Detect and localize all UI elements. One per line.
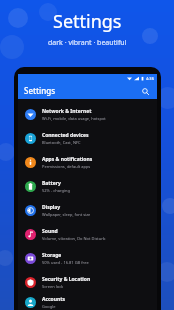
button[interactable]: Security & Location: [18, 270, 157, 294]
staticText: Wallpaper, sleep, font size: [42, 212, 91, 217]
button[interactable]: Network & Internet: [18, 102, 157, 126]
staticText: Settings: [53, 9, 122, 34]
staticText: Network & Internet: [42, 108, 92, 115]
button[interactable]: Connected devices: [18, 126, 157, 150]
staticText: 52% - charging: [42, 188, 70, 193]
button[interactable]: Apps & notifications: [18, 150, 157, 174]
staticText: 4:36: [146, 76, 154, 81]
staticText: Apps & notifications: [42, 156, 93, 163]
staticText: Security & Location: [42, 276, 91, 283]
staticText: Settings: [24, 85, 56, 96]
button[interactable]: Display: [18, 198, 157, 222]
staticText: Volume, vibration, Do Not Disturb: [42, 236, 106, 241]
staticText: Sound: [42, 228, 58, 235]
staticText: Screen lock: [42, 284, 64, 289]
staticText: Display: [42, 204, 61, 211]
staticText: dark · vibrant · beautiful: [48, 38, 127, 48]
staticText: 50% used - 16.81 GB free: [42, 260, 89, 265]
button[interactable]: Search: [139, 85, 151, 97]
button[interactable]: Battery: [18, 174, 157, 198]
staticText: Battery: [42, 180, 61, 187]
staticText: Storage: [42, 252, 62, 259]
staticText: Connected devices: [42, 132, 89, 139]
button[interactable]: Sound: [18, 222, 157, 246]
button[interactable]: Accounts: [18, 294, 157, 310]
staticText: Bluetooth, Cast, NFC: [42, 140, 81, 145]
staticText: Permissions, default apps: [42, 164, 91, 169]
staticText: Google: [42, 304, 56, 309]
staticText: Accounts: [42, 296, 65, 303]
staticText: Wi-Fi, mobile, data usage, hotspot: [42, 116, 106, 121]
button[interactable]: Storage: [18, 246, 157, 270]
